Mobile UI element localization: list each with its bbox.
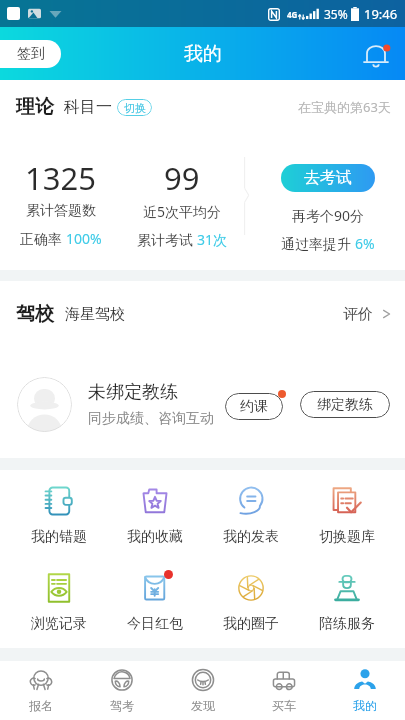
staticText: 浏览记录 bbox=[31, 615, 87, 633]
button[interactable]: 去考试 bbox=[281, 164, 375, 192]
staticText: 4G bbox=[287, 9, 298, 20]
button[interactable]: 切换 bbox=[117, 99, 152, 116]
button[interactable]: 买车 bbox=[243, 661, 324, 720]
button[interactable]: 约课 bbox=[225, 393, 283, 420]
staticText: 同步成绩、咨询互动 bbox=[88, 410, 214, 428]
button[interactable]: 1325 bbox=[0, 157, 121, 248]
staticText: 约课 bbox=[240, 398, 268, 416]
button[interactable]: 99 bbox=[121, 157, 243, 249]
staticText: 100% bbox=[66, 229, 102, 248]
staticText: 99 bbox=[164, 157, 200, 199]
staticText: 19:46 bbox=[364, 5, 398, 23]
staticText: 科目一 bbox=[64, 97, 112, 117]
staticText: 绑定教练 bbox=[317, 396, 373, 414]
button[interactable]: 我的收藏 bbox=[107, 481, 203, 546]
button[interactable]: 今日红包 bbox=[107, 568, 203, 633]
staticText: 海星驾校 bbox=[65, 305, 125, 324]
staticText: 我的 bbox=[184, 42, 222, 66]
staticText: 1325 bbox=[25, 157, 96, 199]
button[interactable]: 绑定教练 bbox=[300, 391, 390, 418]
staticText: 签到 bbox=[17, 45, 45, 63]
staticText: 买车 bbox=[272, 698, 296, 713]
staticText: 31次 bbox=[197, 230, 228, 249]
button[interactable]: 我的圈子 bbox=[203, 568, 299, 633]
button[interactable]: 报名 bbox=[0, 661, 81, 720]
staticText: 驾考 bbox=[110, 698, 134, 713]
staticText: 切换 bbox=[124, 101, 146, 115]
staticText: 驾校 bbox=[16, 302, 54, 326]
staticText: 我的发表 bbox=[223, 528, 279, 546]
staticText: 我的 bbox=[353, 698, 377, 713]
staticText: 我的收藏 bbox=[127, 528, 183, 546]
button[interactable]: 我的错题 bbox=[10, 481, 107, 546]
button[interactable]: 签到 bbox=[0, 40, 61, 68]
staticText: 6% bbox=[355, 234, 375, 253]
staticText: 通过率提升 bbox=[281, 234, 355, 253]
staticText: 近5次平均分 bbox=[143, 202, 222, 221]
staticText: 我的错题 bbox=[31, 528, 87, 546]
staticText: 再考个90分 bbox=[292, 206, 365, 225]
button[interactable]: 驾校 bbox=[0, 281, 405, 326]
staticText: 累计考试 bbox=[137, 230, 197, 249]
button[interactable]: 浏览记录 bbox=[10, 568, 107, 633]
button[interactable]: 我的发表 bbox=[203, 481, 299, 546]
staticText: 陪练服务 bbox=[319, 615, 375, 633]
staticText: 评价 bbox=[343, 305, 373, 324]
staticText: 今日红包 bbox=[127, 615, 183, 633]
staticText: 报名 bbox=[29, 698, 53, 713]
button[interactable]: Notifications bbox=[361, 39, 391, 69]
button[interactable]: 发现 bbox=[162, 661, 243, 720]
staticText: 未绑定教练 bbox=[88, 381, 178, 404]
button[interactable]: 驾考 bbox=[81, 661, 162, 720]
staticText: 正确率 bbox=[20, 229, 66, 248]
staticText: 发现 bbox=[191, 698, 215, 713]
staticText: 去考试 bbox=[304, 168, 352, 188]
staticText: 35% bbox=[324, 6, 348, 22]
button[interactable]: 我的 bbox=[324, 661, 405, 720]
staticText: 理论 bbox=[16, 95, 54, 119]
staticText: 我的圈子 bbox=[223, 615, 279, 633]
staticText: 累计答题数 bbox=[26, 202, 96, 220]
button[interactable]: 切换题库 bbox=[299, 481, 395, 546]
staticText: 在宝典的第63天 bbox=[298, 98, 391, 116]
button[interactable]: 陪练服务 bbox=[299, 568, 395, 633]
staticText: 切换题库 bbox=[319, 528, 375, 546]
